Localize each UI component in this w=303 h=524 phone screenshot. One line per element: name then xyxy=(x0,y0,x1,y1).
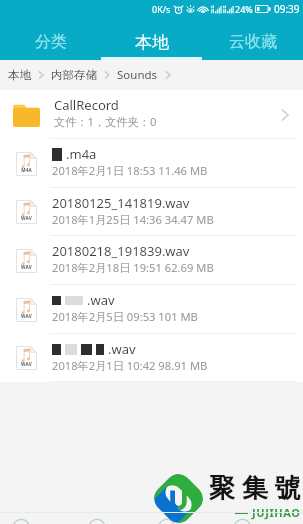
button[interactable]: 本地 xyxy=(101,18,202,60)
staticText: 内部存储 xyxy=(51,68,97,82)
staticText: Sounds xyxy=(117,67,158,83)
staticText: 云收藏 xyxy=(229,32,277,52)
staticText: 2018年2月1日 10:42 98.91 MB xyxy=(52,358,208,373)
button[interactable]: 内部存储 xyxy=(49,63,99,87)
button[interactable]: Sounds xyxy=(115,62,160,88)
staticText: 09:39 xyxy=(274,2,300,16)
button[interactable]: M4A xyxy=(0,139,303,188)
button[interactable]: 分类 xyxy=(0,18,101,60)
staticText: 24% xyxy=(235,3,253,15)
button[interactable]: WAV xyxy=(0,334,303,382)
staticText: 0K/s xyxy=(152,3,171,15)
button[interactable]: CallRecord xyxy=(0,90,303,139)
other: Open folder xyxy=(275,105,295,125)
staticText: 本地 xyxy=(135,32,169,53)
staticText: WAV xyxy=(21,215,32,221)
button[interactable]: WAV xyxy=(0,188,303,236)
staticText: M4A xyxy=(21,167,32,173)
staticText: 20180125_141819.wav xyxy=(52,194,190,212)
button[interactable]: WAV xyxy=(0,285,303,334)
staticText: 聚 集 號 xyxy=(209,469,301,505)
button[interactable]: 本地 xyxy=(6,63,33,87)
staticText: WAV xyxy=(21,313,32,319)
staticText: 文件：1，文件夹：0 xyxy=(54,114,157,129)
staticText: 2018年1月25日 14:36 34.47 MB xyxy=(52,212,214,227)
staticText: 2018年2月18日 19:51 62.69 MB xyxy=(52,260,214,275)
staticText: 20180218_191839.wav xyxy=(52,242,190,260)
button[interactable]: WAV xyxy=(0,236,303,285)
staticText: .wav xyxy=(108,340,136,358)
staticText: 2018年2月5日 09:53 101 MB xyxy=(52,309,198,324)
staticText: .m4a xyxy=(66,145,97,163)
staticText: WAV xyxy=(21,264,32,270)
staticText: 2018年2月1日 18:53 11.46 MB xyxy=(52,163,208,178)
staticText: 本地 xyxy=(8,68,31,82)
staticText: .wav xyxy=(87,291,115,309)
staticText: CallRecord xyxy=(54,96,119,114)
button[interactable]: 云收藏 xyxy=(202,18,303,60)
staticText: WAV xyxy=(21,361,32,367)
staticText: JUJIHAO xyxy=(252,505,301,520)
staticText: 分类 xyxy=(35,32,67,52)
